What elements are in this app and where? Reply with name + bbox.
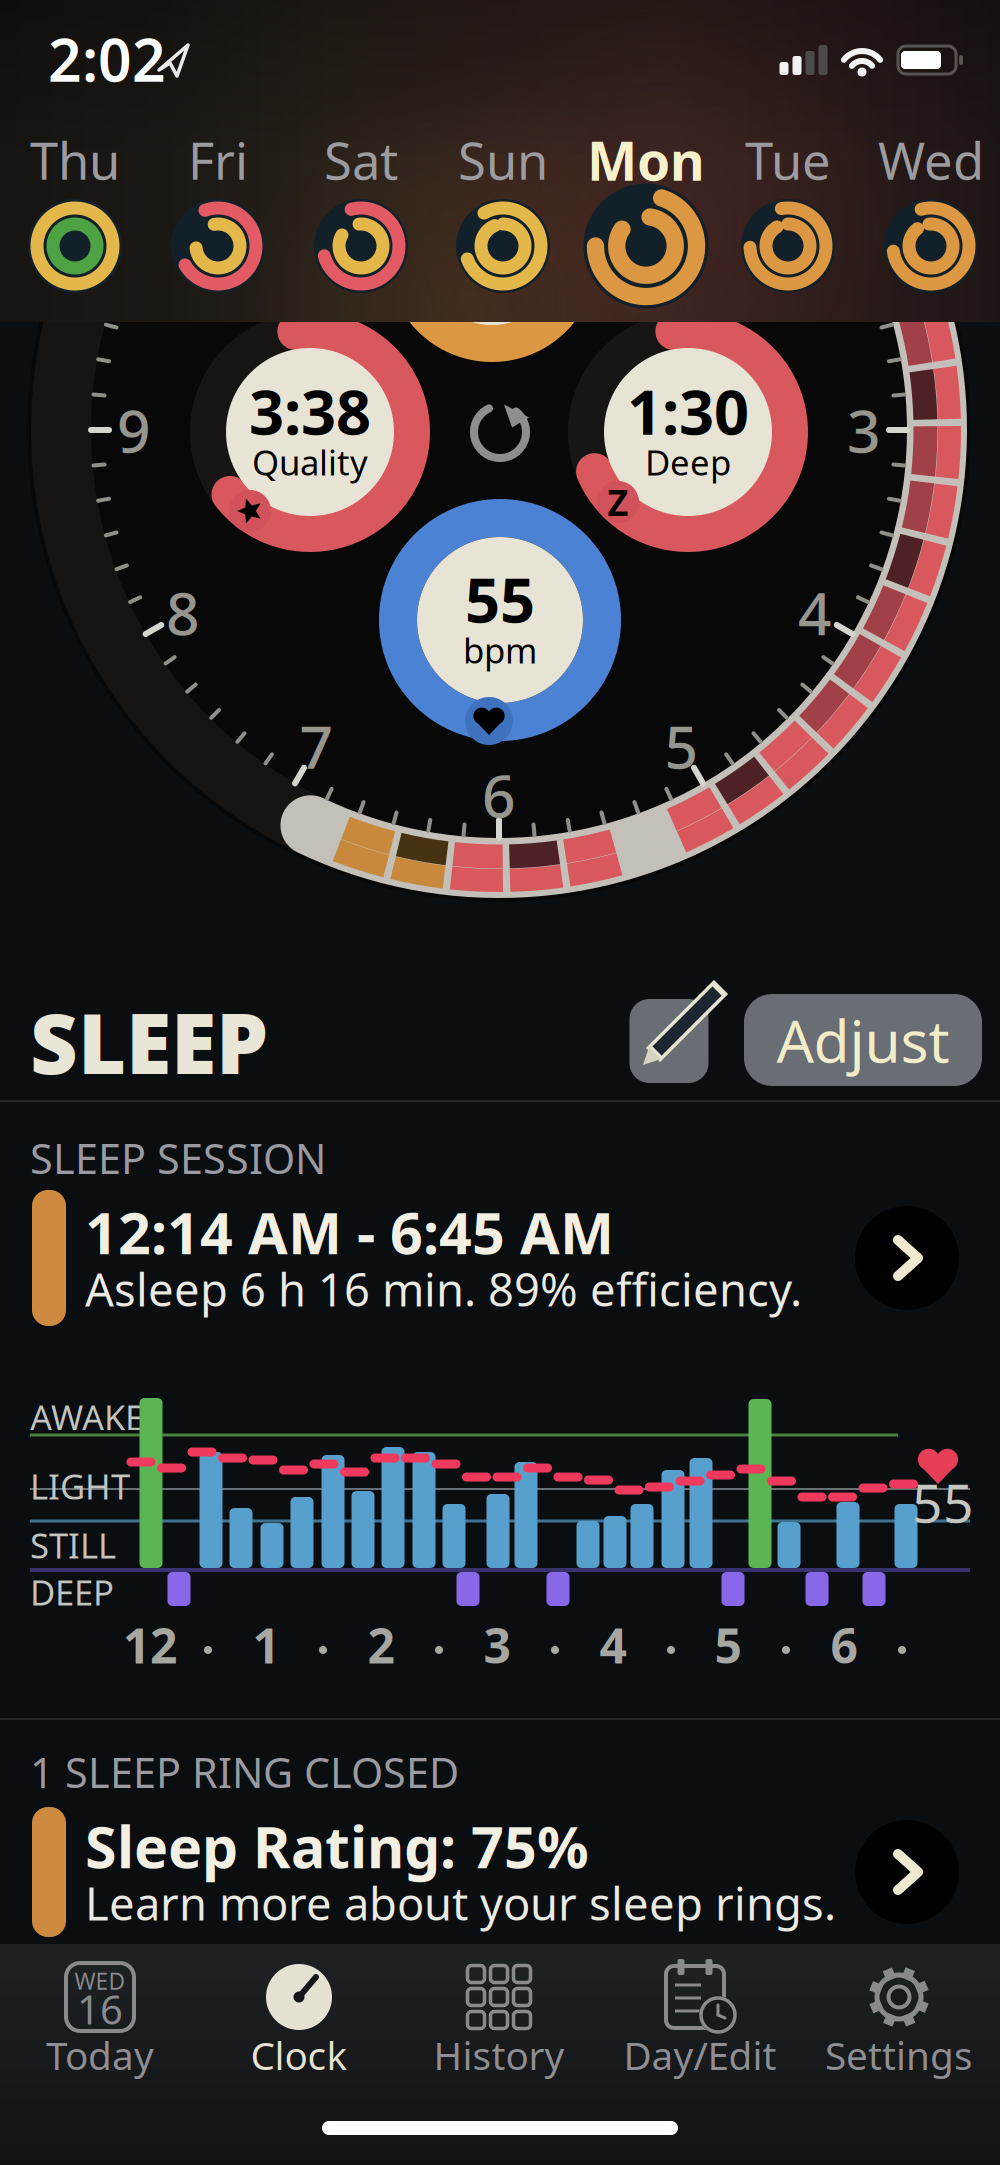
staticText: Wed (878, 126, 984, 194)
staticText: 3 (483, 1613, 510, 1677)
staticText: 2 (798, 208, 832, 286)
staticText: 3 (847, 391, 881, 469)
button[interactable]: Adjust (744, 994, 982, 1086)
staticText: 3:38 (249, 370, 371, 452)
button[interactable]: Tue (718, 120, 858, 310)
staticText: Z (607, 478, 628, 526)
staticText: Today (46, 2029, 154, 2081)
staticText: Quality (252, 439, 368, 485)
staticText: Deep (645, 439, 731, 485)
staticText: 1 (252, 1613, 279, 1677)
button[interactable]: WED (15, 1945, 185, 2075)
staticText: 4 (798, 573, 832, 651)
staticText: SLEEP (30, 987, 268, 1097)
staticText: 1 SLEEP RING CLOSED (30, 1745, 459, 1799)
button[interactable]: Day/Edit (615, 1945, 785, 2075)
staticText: 55 (465, 558, 535, 640)
staticText: Asleep 6 h 16 min. 89% efficiency. (85, 1259, 802, 1319)
button[interactable]: Sat (291, 120, 431, 310)
staticText: 7 (299, 707, 333, 785)
staticText: Clock (250, 2029, 347, 2081)
staticText: AWAKE (30, 1394, 144, 1440)
staticText: 4 (599, 1613, 626, 1677)
staticText: DEEP (30, 1569, 114, 1615)
button[interactable] (455, 385, 545, 475)
button[interactable]: Sleep Rating: 75% (30, 1797, 970, 1947)
staticText: 10 (149, 208, 217, 286)
staticText: Settings (825, 2029, 973, 2081)
staticText: 8 (166, 573, 200, 651)
staticText: 9 (117, 391, 151, 469)
staticText: 12 (123, 1613, 177, 1677)
staticText: Sat (324, 126, 398, 194)
button[interactable]: Clock (214, 1945, 384, 2075)
staticText: Adjust (776, 1001, 949, 1079)
staticText: 16 (77, 1982, 123, 2035)
button[interactable]: 12:14 AM - 6:45 AM (30, 1183, 970, 1333)
button[interactable]: Settings (814, 1945, 984, 2075)
button[interactable] (609, 982, 729, 1092)
staticText: Day/Edit (623, 2029, 776, 2081)
staticText: 12 (465, 26, 533, 104)
staticText: Thu (30, 126, 120, 194)
staticText: 11 (282, 75, 350, 153)
staticText: 12:14 AM - 6:45 AM (85, 1194, 614, 1270)
staticText: Sun (458, 126, 548, 194)
staticText: WED (74, 1966, 125, 1996)
staticText: Sleep Rating: 75% (85, 1808, 589, 1884)
button[interactable]: Sun (433, 120, 573, 310)
staticText: STILL (30, 1522, 116, 1568)
button[interactable]: History (414, 1945, 584, 2075)
staticText: LIGHT (30, 1463, 130, 1509)
staticText: Tue (745, 126, 831, 194)
staticText: History (433, 2029, 564, 2081)
staticText: 2 (367, 1613, 394, 1677)
staticText: Mon (587, 125, 705, 195)
staticText: 6 (830, 1613, 857, 1677)
staticText: Learn more about your sleep rings. (85, 1873, 836, 1933)
staticText: SLEEP SESSION (30, 1131, 326, 1185)
staticText: 5 (714, 1613, 741, 1677)
button[interactable]: Fri (148, 120, 288, 310)
staticText: Fri (188, 126, 248, 194)
staticText: 1 (664, 75, 698, 153)
button[interactable]: Wed (861, 120, 1000, 310)
staticText: 1:30 (627, 370, 749, 452)
staticText: 5 (664, 707, 698, 785)
staticText: bpm (463, 627, 537, 673)
staticText: 55 (912, 1467, 974, 1537)
button[interactable]: Mon (576, 120, 716, 310)
staticText: 2:02 (48, 20, 166, 98)
button[interactable]: Thu (5, 120, 145, 310)
staticText: 6 (482, 756, 516, 834)
